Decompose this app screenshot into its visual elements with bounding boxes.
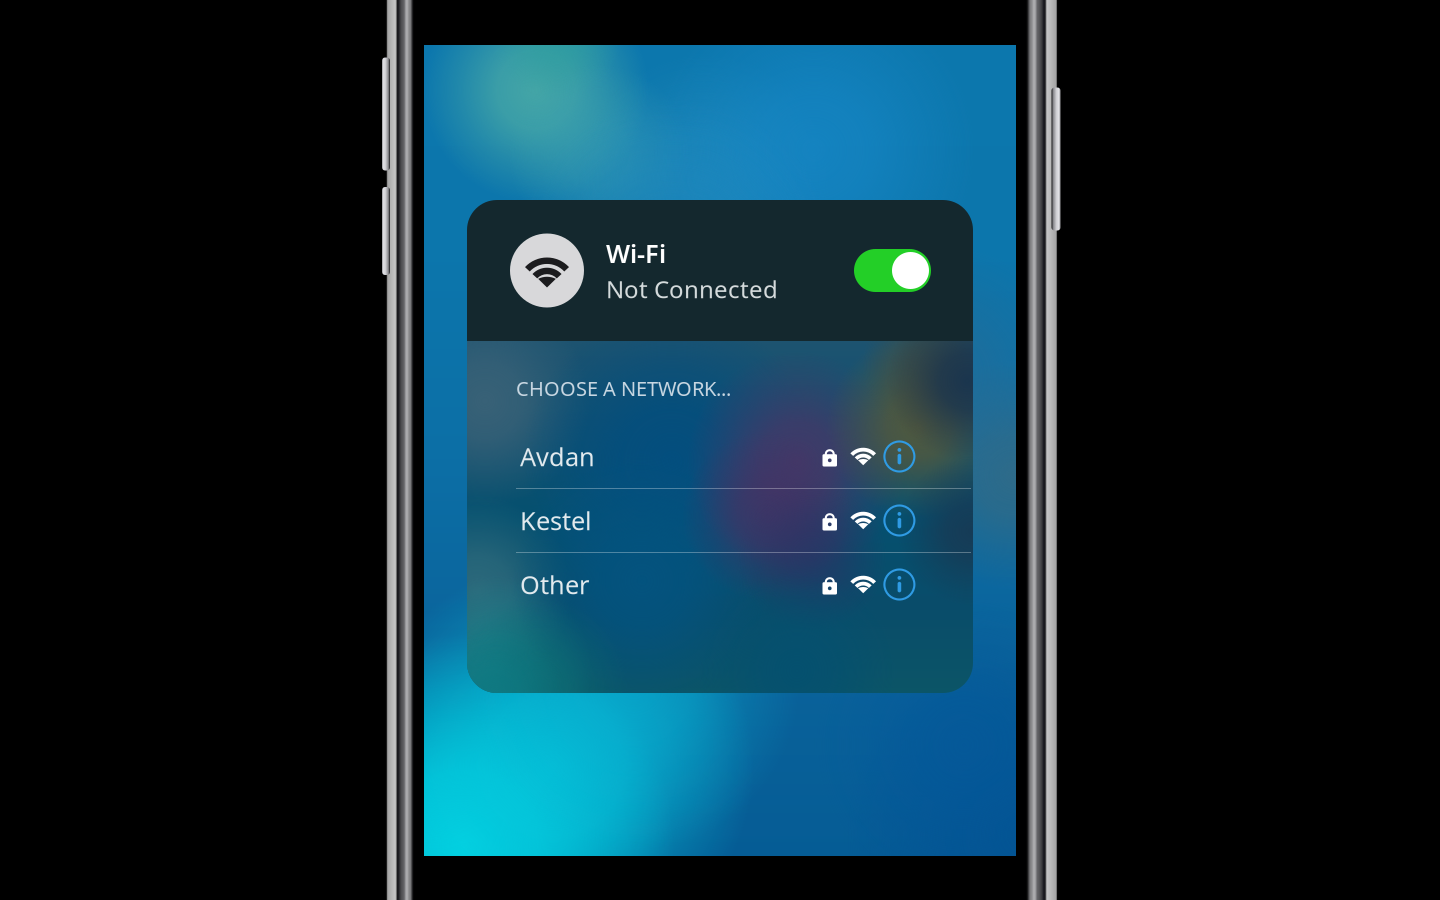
button[interactable]: [854, 249, 931, 292]
staticText: Avdan: [520, 440, 595, 473]
staticText: Other: [520, 568, 589, 601]
staticText: CHOOSE A NETWORK...: [516, 375, 731, 402]
button[interactable]: Kestel: [467, 489, 973, 552]
staticText: Wi-Fi: [606, 236, 666, 270]
staticText: Not Connected: [606, 273, 778, 305]
button[interactable]: Avdan: [467, 425, 973, 488]
button[interactable]: Other: [467, 553, 973, 616]
staticText: Kestel: [520, 504, 592, 537]
